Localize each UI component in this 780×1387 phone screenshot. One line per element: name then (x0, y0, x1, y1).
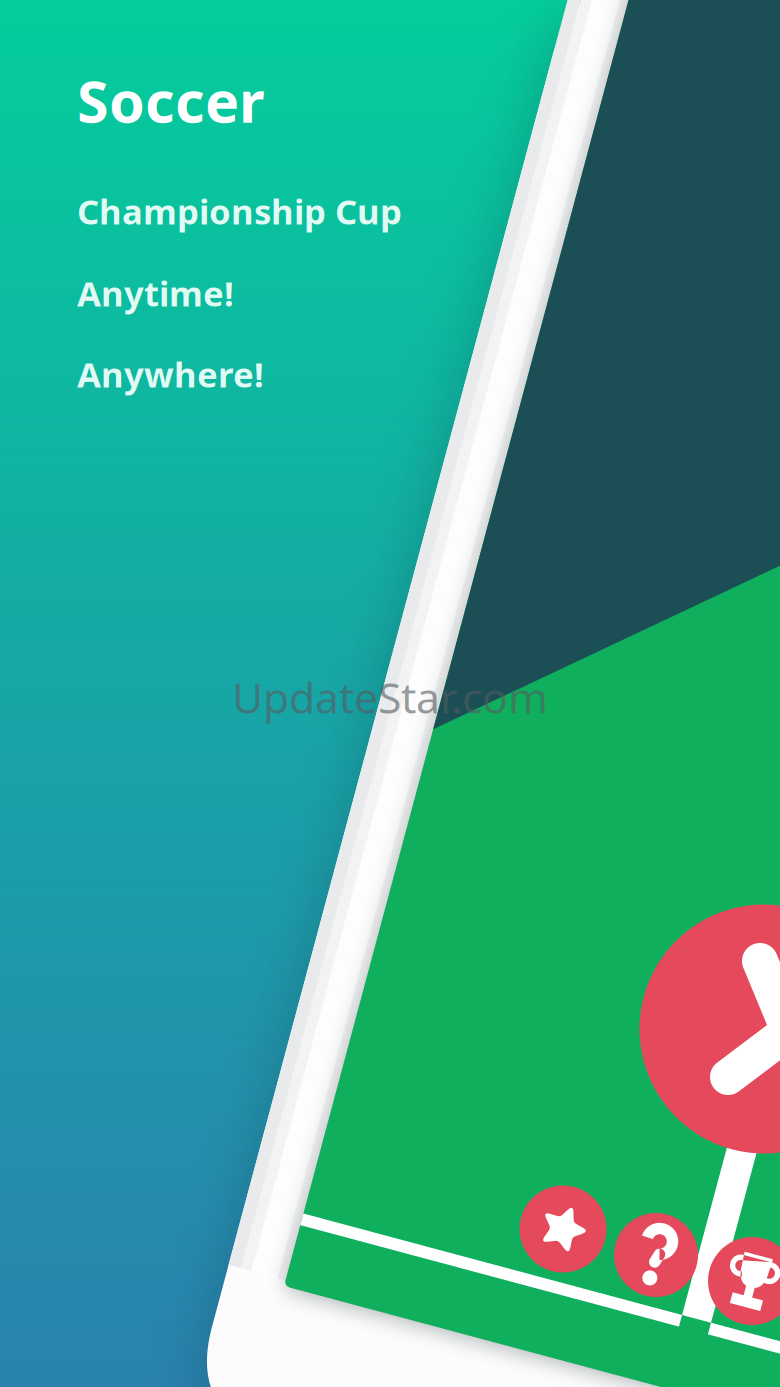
staticText: Anytime! (77, 270, 234, 316)
staticText: Championship Cup (77, 188, 402, 234)
button[interactable]: Trophies (708, 1237, 780, 1325)
staticText: Soccer (77, 62, 265, 138)
button[interactable]: Help (614, 1213, 698, 1297)
staticText: Anywhere! (77, 351, 264, 397)
staticText: UpdateStar.com (232, 669, 548, 725)
button[interactable]: Favourites (519, 1185, 606, 1272)
